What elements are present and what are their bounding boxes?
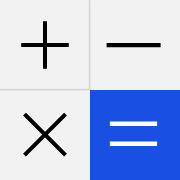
button[interactable]: Plus xyxy=(0,0,90,90)
button[interactable]: Equals xyxy=(90,90,180,180)
button[interactable]: Minus xyxy=(90,0,180,90)
button[interactable]: Multiply xyxy=(0,90,90,180)
